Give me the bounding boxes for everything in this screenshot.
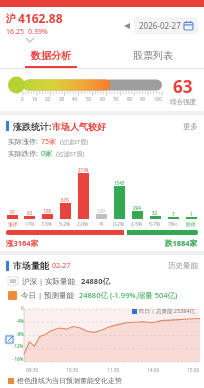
staticText: 91 xyxy=(10,209,16,215)
staticText: 橙色曲线为当日预测量能变化走势 xyxy=(17,376,122,385)
staticText: 20 xyxy=(45,96,51,102)
button[interactable]: 2026-02-27 xyxy=(134,17,198,34)
staticText: 63 xyxy=(173,75,193,98)
button[interactable]: 数据分析 xyxy=(0,45,102,68)
staticText: 2-0% xyxy=(77,221,89,228)
staticText: -4% xyxy=(16,318,24,324)
staticText: 294 xyxy=(133,205,141,211)
staticText: >7% xyxy=(25,221,35,228)
staticText: 涨3164家 xyxy=(6,238,39,248)
staticText: -8% xyxy=(16,331,24,337)
staticText: -12% xyxy=(13,343,24,349)
staticText: 676 xyxy=(61,197,69,203)
staticText: 跌1884家 xyxy=(165,238,198,248)
staticText: 1545 xyxy=(114,180,125,186)
staticText: 15:00 xyxy=(187,367,200,374)
staticText: 涨停 xyxy=(8,221,18,227)
button[interactable]: 股票列表 xyxy=(102,45,204,68)
staticText: 7-5% xyxy=(41,221,53,228)
staticText: (过滤ST股) xyxy=(60,138,89,146)
staticText: 5-7% xyxy=(149,221,161,228)
staticText: 0 xyxy=(21,305,24,311)
staticText: 70 xyxy=(113,96,119,102)
staticText: 市场量能 xyxy=(13,260,49,271)
staticText: 63 xyxy=(27,210,33,216)
staticText: 60 xyxy=(100,96,106,102)
staticText: 16.25 xyxy=(6,27,24,37)
button[interactable]: 更多 xyxy=(183,122,198,131)
staticText: 2196 xyxy=(78,167,89,173)
staticText: 7%< xyxy=(168,221,178,228)
staticText: 4162.88 xyxy=(18,10,63,26)
staticText: 平 xyxy=(99,221,104,227)
button[interactable]: Previous day xyxy=(120,19,134,33)
button[interactable]: Share xyxy=(3,333,16,346)
staticText: 昨日 | 总量能 25384亿 xyxy=(139,307,196,315)
staticText: 40 xyxy=(72,96,78,102)
staticText: 0.39% xyxy=(28,27,48,37)
staticText: 75家 xyxy=(41,137,57,147)
staticText: 02-27 xyxy=(52,261,71,271)
staticText: 跌停 xyxy=(186,221,196,227)
staticText: 实际跌停: xyxy=(8,149,38,159)
staticText: 股票列表 xyxy=(133,49,173,62)
staticText: 10:30 xyxy=(66,367,79,374)
staticText: 90 xyxy=(140,96,146,102)
staticText: 7 xyxy=(172,211,175,217)
staticText: 5-2% xyxy=(59,221,71,228)
staticText: 14:00 xyxy=(147,367,160,374)
staticText: (过滤ST股) xyxy=(56,150,85,158)
staticText: 24880亿 (-1.99%,缩量 504亿) xyxy=(79,290,178,300)
staticText: 138 xyxy=(43,208,51,214)
staticText: 11:30 xyxy=(107,367,120,374)
staticText: 2-5% xyxy=(131,221,143,228)
staticText: 今日 | 预测量能 xyxy=(21,290,75,300)
staticText: 129 xyxy=(97,208,105,214)
button[interactable]: 历史量能 xyxy=(168,261,198,270)
staticText: 沪深 | 实际量能 xyxy=(22,276,76,286)
staticText: 实际涨停: xyxy=(8,137,38,147)
staticText: 09:30 xyxy=(26,367,39,374)
staticText: 10 xyxy=(32,96,38,102)
staticText: 涨跌统计: xyxy=(13,120,52,132)
staticText: 50 xyxy=(86,96,92,102)
staticText: 1 xyxy=(190,211,193,217)
staticText: 80 xyxy=(127,96,133,102)
staticText: 24880亿 xyxy=(81,276,110,286)
staticText: 数据分析 xyxy=(31,49,71,62)
staticText: 30 xyxy=(59,96,65,102)
staticText: 市场人气较好 xyxy=(52,121,106,132)
staticText: 沪 xyxy=(6,12,16,25)
staticText: 综合强度 xyxy=(170,98,196,106)
staticText: -16% xyxy=(13,356,24,362)
staticText: 100 xyxy=(154,96,162,102)
staticText: 32 xyxy=(152,210,158,216)
staticText: 0 xyxy=(21,96,24,102)
staticText: 0-2% xyxy=(113,221,125,228)
staticText: 0家 xyxy=(41,149,53,159)
staticText: 2026-02-27 xyxy=(139,20,181,31)
